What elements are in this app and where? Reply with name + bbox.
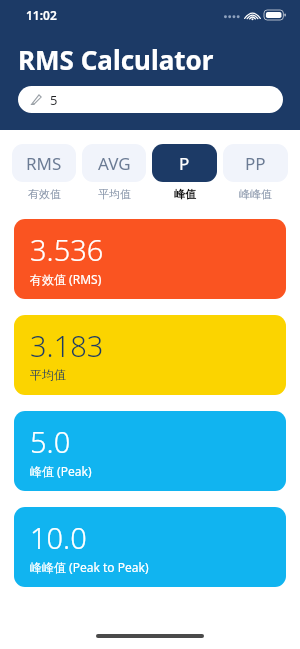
staticText: 峰峰值 (Peak to Peak) <box>30 559 149 575</box>
button[interactable]: PP <box>223 144 288 201</box>
staticText: 3.183 <box>30 326 104 365</box>
staticText: AVG <box>98 152 131 175</box>
staticText: 峰值 <box>174 187 196 201</box>
staticText: 5.0 <box>30 422 71 461</box>
staticText: P <box>179 152 190 175</box>
button[interactable]: 3.536 <box>14 219 286 299</box>
staticText: RMS <box>26 152 62 175</box>
button[interactable]: 10.0 <box>14 507 286 587</box>
button[interactable]: 3.183 <box>14 315 286 395</box>
staticText: 10.0 <box>30 518 87 557</box>
button[interactable]: P <box>152 144 217 201</box>
staticText: 5 <box>50 91 58 109</box>
button[interactable]: AVG <box>82 144 146 201</box>
staticText: 平均值 <box>98 187 131 201</box>
button[interactable]: 5 <box>18 86 283 113</box>
staticText: 11:02 <box>26 7 57 23</box>
staticText: 峰峰值 <box>239 187 272 201</box>
staticText: 峰值 (Peak) <box>30 463 92 479</box>
staticText: 平均值 <box>30 367 66 382</box>
button[interactable]: RMS <box>12 144 76 201</box>
staticText: 3.536 <box>30 230 104 269</box>
staticText: 有效值 <box>28 187 61 201</box>
button[interactable]: 5.0 <box>14 411 286 491</box>
staticText: 有效值 (RMS) <box>30 271 102 287</box>
staticText: PP <box>245 152 266 175</box>
staticText: RMS Calculator <box>18 42 214 77</box>
